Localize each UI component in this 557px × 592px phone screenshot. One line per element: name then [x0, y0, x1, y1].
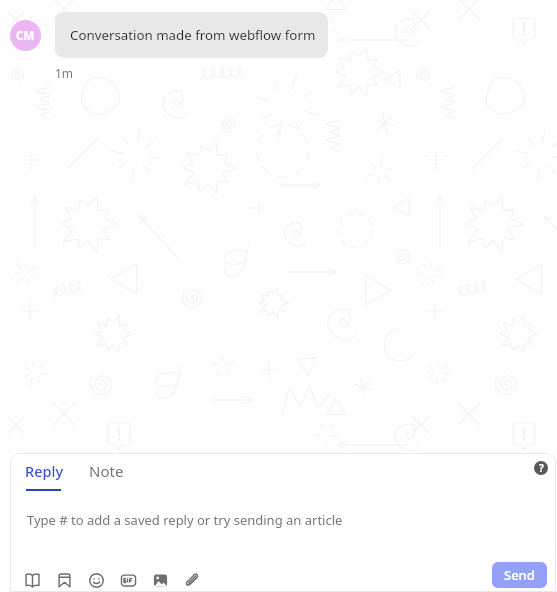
staticText: Reply — [25, 461, 64, 481]
button[interactable]: Bookmark — [48, 562, 80, 592]
button[interactable]: Conversation made from webflow form — [55, 12, 328, 58]
button[interactable]: Attach — [176, 562, 208, 592]
button[interactable]: Image — [144, 562, 176, 592]
staticText: 1m — [55, 65, 74, 81]
button[interactable]: Type # to add a saved reply or try sendi… — [10, 491, 556, 562]
staticText: Note — [89, 461, 124, 481]
button[interactable]: Help — [534, 461, 548, 475]
staticText: ? — [539, 461, 544, 475]
button[interactable]: Profile CM — [10, 20, 41, 51]
button[interactable]: Saved replies — [16, 562, 48, 592]
staticText: CM — [16, 28, 35, 44]
button[interactable]: GIF — [112, 562, 144, 592]
staticText: Send — [504, 566, 535, 584]
button[interactable]: Note — [89, 453, 124, 489]
staticText: Conversation made from webflow form — [70, 26, 316, 44]
staticText: Type # to add a saved reply or try sendi… — [27, 511, 343, 529]
button[interactable]: Emoji — [80, 562, 112, 592]
button[interactable]: Reply — [25, 453, 64, 489]
button[interactable]: Send — [492, 562, 547, 588]
